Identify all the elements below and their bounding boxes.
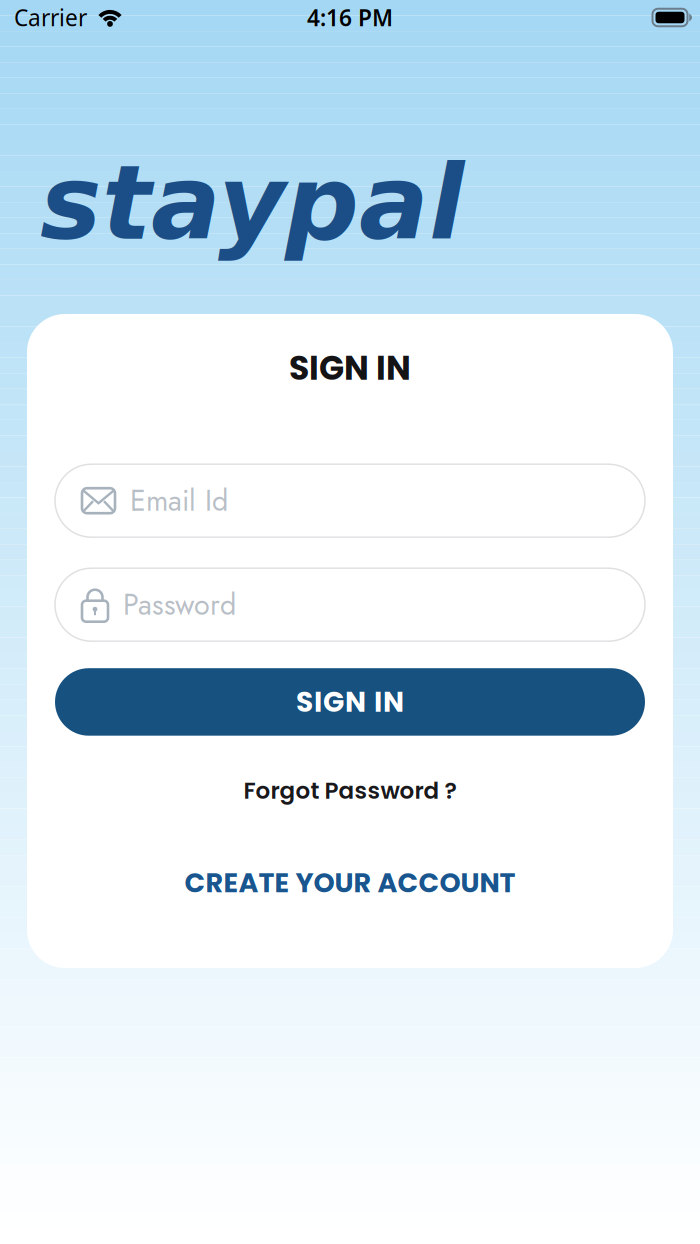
button[interactable]: CREATE YOUR ACCOUNT [184, 864, 515, 902]
staticText: Email Id [130, 480, 228, 521]
staticText: 4:16 PM [307, 2, 393, 32]
button[interactable]: Forgot Password ? [243, 775, 456, 807]
staticText: SIGN IN [289, 345, 411, 391]
staticText: Forgot Password ? [243, 775, 456, 807]
button[interactable]: Password [55, 568, 645, 641]
staticText: CREATE YOUR ACCOUNT [184, 864, 515, 902]
button[interactable]: Email Id [55, 464, 645, 537]
button[interactable]: SIGN IN [55, 668, 645, 736]
staticText: Carrier [14, 2, 87, 32]
staticText: staypal [40, 143, 464, 263]
staticText: Password [123, 584, 236, 625]
staticText: SIGN IN [296, 682, 404, 722]
